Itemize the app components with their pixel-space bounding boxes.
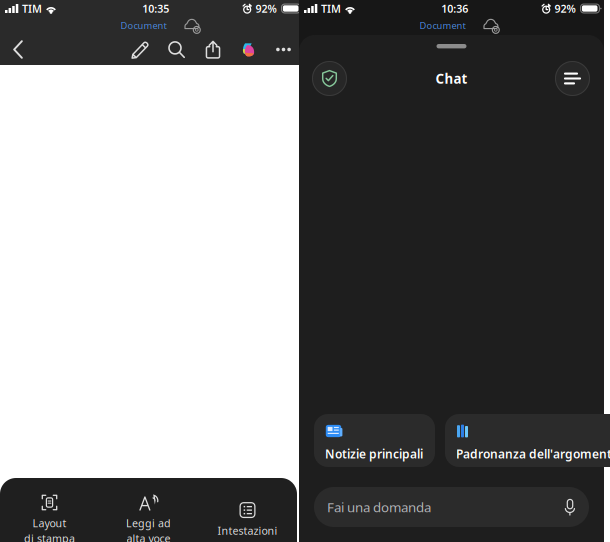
staticText: Padronanza dell'argomento xyxy=(456,446,610,462)
button[interactable]: Back xyxy=(1,34,35,65)
button[interactable]: Layout xyxy=(0,494,99,542)
staticText: Fai una domanda xyxy=(327,498,431,516)
staticText: Notizie principali xyxy=(325,446,423,462)
staticText: 92% xyxy=(256,1,277,16)
staticText: Document xyxy=(120,19,166,32)
button[interactable]: Notizie principali xyxy=(314,414,435,467)
staticText: 92% xyxy=(555,1,576,16)
button[interactable]: Leggi ad xyxy=(99,494,198,542)
staticText: 10:35 xyxy=(142,1,169,16)
button[interactable]: Fai una domanda xyxy=(314,487,589,527)
staticText: 10:36 xyxy=(441,1,468,16)
staticText: alta voce xyxy=(126,531,170,542)
button[interactable]: Saved to cloud xyxy=(183,18,200,32)
button[interactable]: Padronanza dell'argomento xyxy=(445,414,610,467)
staticText: Leggi ad xyxy=(126,516,171,530)
button[interactable]: Chat history xyxy=(555,61,590,96)
staticText: Layout xyxy=(32,516,66,530)
button[interactable]: Saved to cloud xyxy=(482,18,499,32)
staticText: Chat xyxy=(435,70,467,87)
staticText: TIM xyxy=(321,1,341,16)
button[interactable]: Document xyxy=(419,19,465,32)
staticText: TIM xyxy=(22,1,42,16)
button[interactable]: Edit xyxy=(122,34,158,65)
button[interactable]: Copilot xyxy=(231,34,266,65)
staticText: di stampa xyxy=(24,531,75,542)
button[interactable]: More options xyxy=(266,34,301,65)
staticText: Intestazioni xyxy=(217,524,277,538)
button[interactable]: Share xyxy=(195,34,231,65)
button[interactable]: Document xyxy=(120,19,166,32)
staticText: Document xyxy=(419,19,465,32)
button[interactable]: Search xyxy=(158,34,195,65)
button[interactable]: Privacy and security xyxy=(312,61,347,96)
button[interactable]: Intestazioni xyxy=(198,502,297,538)
